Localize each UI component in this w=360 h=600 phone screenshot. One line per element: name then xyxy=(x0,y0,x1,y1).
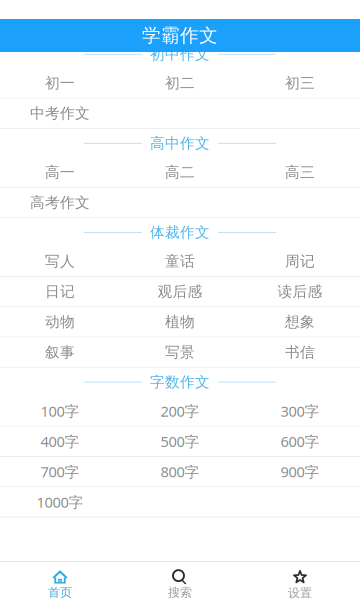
button[interactable]: 设置 xyxy=(240,562,360,600)
button[interactable]: 900字 xyxy=(240,457,360,486)
staticText: 学霸作文 xyxy=(142,24,218,47)
button[interactable]: 周记 xyxy=(240,247,360,276)
staticText: 初三 xyxy=(285,74,315,92)
button[interactable]: 中考作文 xyxy=(0,99,120,128)
staticText: 200字 xyxy=(160,401,199,421)
staticText: 900字 xyxy=(280,462,319,481)
staticText: 周记 xyxy=(285,252,315,270)
staticText: 叙事 xyxy=(45,343,75,361)
staticText: 1000字 xyxy=(36,492,83,512)
button[interactable]: 初一 xyxy=(0,68,120,98)
button[interactable]: 首页 xyxy=(0,562,120,600)
staticText: 高三 xyxy=(285,163,315,181)
button[interactable]: 植物 xyxy=(120,307,240,337)
button[interactable]: 600字 xyxy=(240,427,360,456)
staticText: 搜索 xyxy=(168,585,192,600)
staticText: 初一 xyxy=(45,74,75,92)
button[interactable]: 观后感 xyxy=(120,277,240,306)
staticText: 高考作文 xyxy=(30,193,90,211)
button[interactable]: 高考作文 xyxy=(0,188,120,217)
button[interactable]: 100字 xyxy=(0,396,120,426)
staticText: 想象 xyxy=(285,313,315,331)
button[interactable]: 初二 xyxy=(120,68,240,98)
staticText: 童话 xyxy=(165,252,195,270)
button[interactable]: 800字 xyxy=(120,457,240,486)
staticText: 读后感 xyxy=(277,283,322,301)
staticText: 高一 xyxy=(45,163,75,181)
staticText: 首页 xyxy=(48,585,72,600)
button[interactable]: 1000字 xyxy=(0,487,120,517)
button[interactable]: 书信 xyxy=(240,338,360,367)
staticText: 500字 xyxy=(160,432,199,451)
staticText: 600字 xyxy=(280,432,319,451)
button[interactable]: 500字 xyxy=(120,427,240,456)
button[interactable]: 动物 xyxy=(0,307,120,337)
staticText: 观后感 xyxy=(157,283,202,301)
staticText: 体裁作文 xyxy=(150,223,210,241)
staticText: 800字 xyxy=(160,462,199,481)
staticText: 中考作文 xyxy=(30,104,90,122)
staticText: 写景 xyxy=(165,343,195,361)
button[interactable]: 写景 xyxy=(120,338,240,367)
staticText: 400字 xyxy=(40,432,79,451)
button[interactable]: 高三 xyxy=(240,158,360,187)
staticText: 初中作文 xyxy=(150,45,210,63)
button[interactable]: 700字 xyxy=(0,457,120,486)
staticText: 设置 xyxy=(288,586,312,600)
button[interactable]: 写人 xyxy=(0,247,120,276)
button[interactable]: 想象 xyxy=(240,307,360,337)
staticText: 高二 xyxy=(165,163,195,181)
button[interactable]: 高二 xyxy=(120,158,240,187)
staticText: 初二 xyxy=(165,74,195,92)
button[interactable]: 高一 xyxy=(0,158,120,187)
staticText: 高中作文 xyxy=(150,134,210,152)
button[interactable]: 200字 xyxy=(120,396,240,426)
staticText: 写人 xyxy=(45,252,75,270)
button[interactable]: 400字 xyxy=(0,427,120,456)
staticText: 100字 xyxy=(40,401,79,421)
staticText: 植物 xyxy=(165,313,195,331)
button[interactable]: 初三 xyxy=(240,68,360,98)
button[interactable]: 300字 xyxy=(240,396,360,426)
button[interactable]: 日记 xyxy=(0,277,120,306)
staticText: 300字 xyxy=(280,401,319,421)
staticText: 700字 xyxy=(40,462,79,481)
staticText: 动物 xyxy=(45,313,75,331)
button[interactable]: 童话 xyxy=(120,247,240,276)
button[interactable]: 读后感 xyxy=(240,277,360,306)
staticText: 字数作文 xyxy=(150,373,210,391)
staticText: 书信 xyxy=(285,343,315,361)
staticText: 日记 xyxy=(45,283,75,301)
button[interactable]: 叙事 xyxy=(0,338,120,367)
button[interactable]: 搜索 xyxy=(120,562,240,600)
